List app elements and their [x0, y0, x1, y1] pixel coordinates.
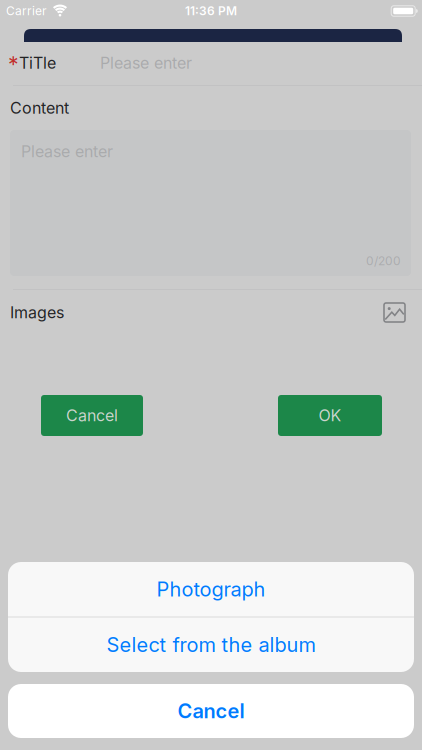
- staticText: Select from the album: [106, 633, 315, 657]
- staticText: Cancel: [177, 699, 244, 723]
- button[interactable]: Add image: [384, 303, 405, 322]
- staticText: Photograph: [156, 577, 265, 601]
- button[interactable]: Cancel: [8, 684, 414, 738]
- staticText: Carrier: [6, 4, 47, 18]
- staticText: 11:36 PM: [185, 4, 237, 18]
- staticText: OK: [318, 406, 341, 425]
- button[interactable]: Photograph: [8, 562, 414, 616]
- button[interactable]: Cancel: [41, 395, 143, 436]
- staticText: Please enter: [100, 54, 192, 72]
- staticText: 0/200: [366, 254, 401, 268]
- staticText: Content: [10, 99, 69, 117]
- staticText: Please enter: [21, 142, 113, 161]
- button[interactable]: Select from the album: [8, 617, 414, 672]
- staticText: TiTle: [19, 54, 56, 72]
- staticText: *: [8, 52, 19, 77]
- staticText: Images: [10, 303, 64, 322]
- staticText: Cancel: [66, 406, 118, 425]
- button[interactable]: OK: [278, 395, 382, 436]
